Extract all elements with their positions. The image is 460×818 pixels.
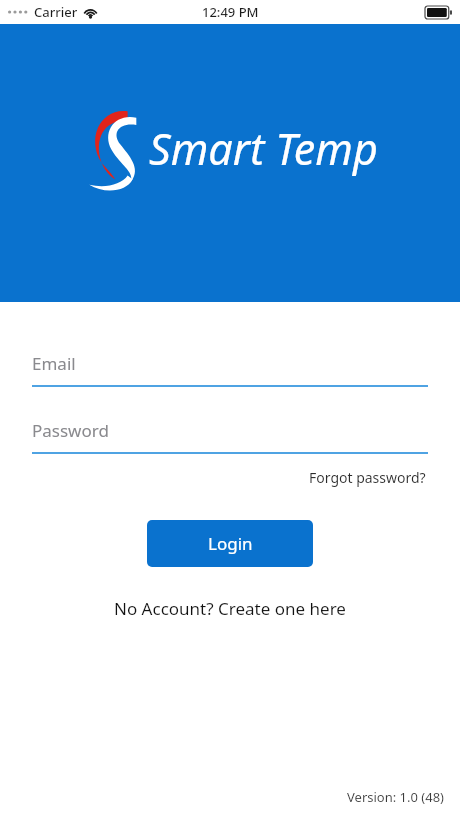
staticText: Carrier xyxy=(34,3,78,21)
button[interactable]: Email xyxy=(32,350,428,387)
staticText: No Account? Create one here xyxy=(114,597,346,620)
staticText: Version: 1.0 (48) xyxy=(347,788,444,806)
staticText: Smart Temp xyxy=(149,119,378,178)
button[interactable]: Forgot password? xyxy=(307,464,428,491)
staticText: Forgot password? xyxy=(309,468,426,487)
button[interactable]: Login xyxy=(147,520,313,567)
button[interactable]: Password xyxy=(32,417,428,454)
staticText: Password xyxy=(32,419,109,442)
staticText: 12:49 PM xyxy=(202,3,259,21)
staticText: Email xyxy=(32,352,76,375)
staticText: Login xyxy=(208,532,253,555)
button[interactable]: No Account? Create one here xyxy=(110,593,350,624)
